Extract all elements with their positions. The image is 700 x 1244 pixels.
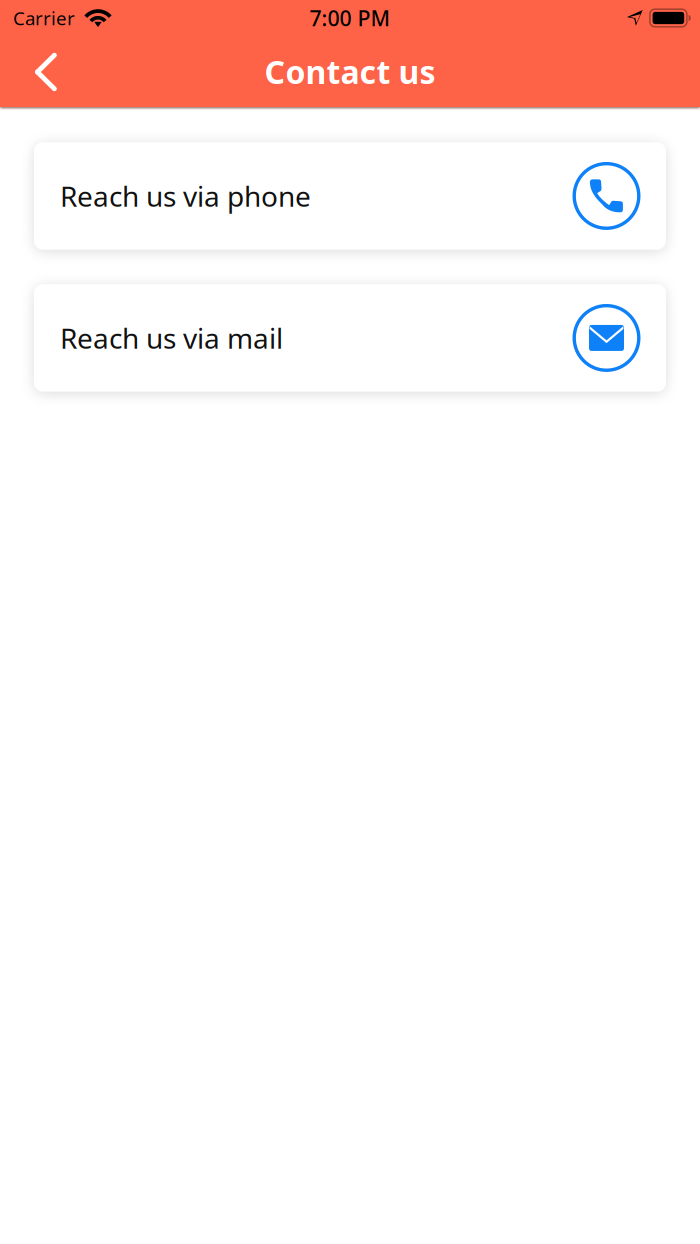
button[interactable]: Reach us via phone — [34, 142, 666, 250]
button[interactable]: Back — [0, 40, 71, 102]
staticText: Contact us — [264, 50, 435, 93]
staticText: Carrier — [13, 6, 75, 30]
staticText: 7:00 PM — [309, 4, 390, 32]
staticText: Reach us via mail — [60, 319, 283, 357]
button[interactable]: Reach us via mail — [34, 284, 666, 392]
staticText: Reach us via phone — [60, 177, 311, 215]
